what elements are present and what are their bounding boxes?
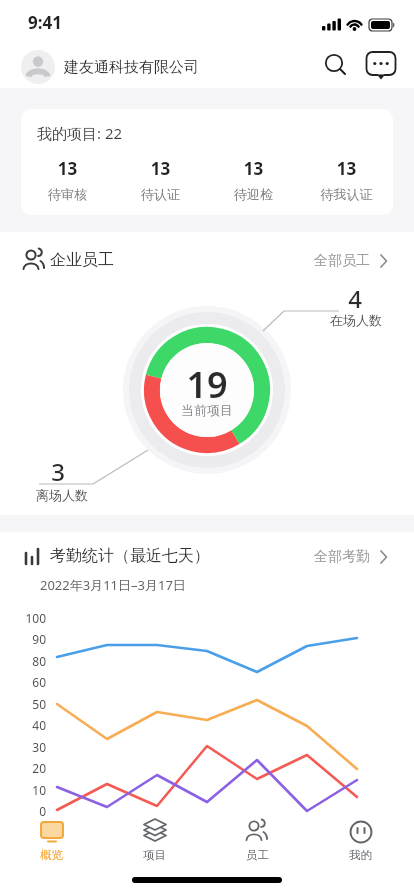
staticText: 当前项目 [157,402,257,418]
staticText: 80 [14,653,46,669]
staticText: 待迎检 [207,186,300,202]
staticText: 企业员工 [50,250,114,270]
staticText: 20 [14,760,46,776]
staticText: 在场人数 [330,312,382,328]
staticText: 19 [157,360,257,409]
button[interactable] [310,244,394,272]
staticText: 13 [300,157,393,180]
staticText: 0 [14,803,46,819]
button[interactable]: 员工 [206,816,309,880]
button[interactable] [362,48,400,86]
staticText: 60 [14,674,46,690]
staticText: 13 [207,157,300,180]
staticText: 30 [14,739,46,755]
staticText: 我的项目: 22 [37,123,123,143]
staticText: 2022年3月11日–3月17日 [40,576,186,594]
staticText: 考勤统计（最近七天） [50,546,210,566]
staticText: 90 [14,631,46,647]
staticText: 13 [114,157,207,180]
staticText: 9:41 [28,11,62,34]
staticText: 4 [335,282,375,315]
staticText: 100 [14,610,46,626]
button[interactable] [21,109,393,215]
button[interactable]: 项目 [103,816,206,880]
button[interactable] [322,50,350,78]
staticText: 全部考勤 [314,548,370,566]
staticText: 待审核 [21,186,114,202]
staticText: 项目 [143,848,166,862]
staticText: 50 [14,696,46,712]
button[interactable]: 我的 [309,816,412,880]
button[interactable] [310,540,394,568]
staticText: 建友通科技有限公司 [64,58,199,77]
staticText: 40 [14,717,46,733]
staticText: 3 [38,455,78,488]
staticText: 员工 [246,848,269,862]
staticText: 待认证 [114,186,207,202]
staticText: 13 [21,157,114,180]
staticText: 10 [14,782,46,798]
staticText: 我的 [349,848,372,862]
staticText: 离场人数 [36,487,88,503]
staticText: 概览 [40,848,63,862]
staticText: 待我认证 [300,186,393,202]
staticText: 全部员工 [314,252,370,270]
button[interactable]: 概览 [0,816,103,880]
